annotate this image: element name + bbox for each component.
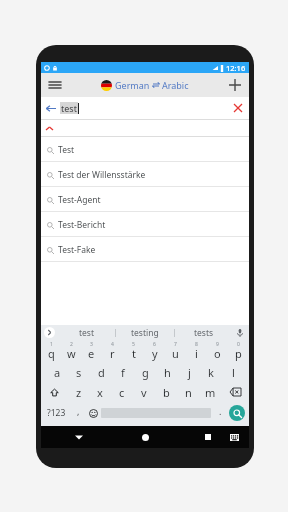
button[interactable]: a (46, 362, 68, 382)
button[interactable]: 2 (61, 340, 81, 362)
staticText: y (152, 346, 158, 361)
staticText: z (76, 385, 82, 400)
button[interactable]: 7 (165, 340, 186, 362)
staticText: Test (58, 144, 75, 156)
staticText: b (163, 385, 170, 400)
button[interactable]: 6 (144, 340, 165, 362)
staticText: 6 (153, 341, 156, 348)
staticText: m (205, 385, 216, 400)
staticText: g (142, 365, 149, 380)
button[interactable]: Home (137, 429, 153, 445)
staticText: . (219, 405, 222, 417)
button[interactable]: Test (41, 137, 249, 162)
button[interactable]: x (89, 382, 111, 402)
staticText: 3 (90, 341, 93, 348)
button[interactable]: , (71, 402, 85, 424)
staticText: o (214, 346, 221, 361)
staticText: 8 (195, 341, 198, 348)
button[interactable]: Shift (41, 382, 68, 402)
staticText: 12:16 (226, 63, 246, 73)
staticText: t (132, 346, 136, 361)
staticText: ?123 (47, 407, 66, 419)
staticText: German (115, 79, 150, 91)
button[interactable]: d (90, 362, 112, 382)
button[interactable]: German (101, 79, 189, 91)
staticText: k (208, 365, 214, 380)
button[interactable]: Emoji (85, 402, 101, 424)
staticText: v (141, 385, 147, 400)
button[interactable]: Backspace (221, 382, 249, 402)
button[interactable]: More suggestions (44, 327, 55, 338)
button[interactable]: Add (225, 75, 245, 95)
button[interactable]: Collapse (41, 120, 249, 136)
staticText: d (98, 365, 105, 380)
staticText: x (97, 385, 103, 400)
button[interactable]: c (111, 382, 133, 402)
staticText: i (195, 346, 198, 361)
button[interactable]: 5 (123, 340, 144, 362)
button[interactable]: z (68, 382, 89, 402)
staticText: testing (131, 327, 159, 339)
staticText: u (172, 346, 179, 361)
staticText: e (88, 346, 95, 361)
staticText: test (79, 327, 95, 339)
button[interactable]: Test-Bericht (41, 212, 249, 237)
button[interactable]: Menu (45, 75, 65, 95)
button[interactable]: 0 (228, 340, 249, 362)
staticText: 0 (237, 341, 240, 348)
staticText: j (188, 365, 191, 380)
staticText: f (121, 365, 125, 380)
staticText: 9 (216, 341, 219, 348)
staticText: c (119, 385, 125, 400)
button[interactable]: tests (175, 325, 233, 340)
button[interactable]: 1 (41, 340, 61, 362)
button[interactable]: testing (116, 325, 174, 340)
button[interactable]: n (177, 382, 199, 402)
button[interactable]: 9 (207, 340, 228, 362)
button[interactable]: v (133, 382, 155, 402)
staticText: p (235, 346, 242, 361)
staticText: q (48, 346, 55, 361)
button[interactable]: Search (229, 405, 245, 421)
button[interactable]: Back (41, 97, 249, 119)
button[interactable]: m (199, 382, 221, 402)
staticText: Test-Agent (58, 194, 101, 206)
button[interactable]: g (134, 362, 156, 382)
staticText: s (76, 365, 82, 380)
button[interactable]: h (156, 362, 178, 382)
button[interactable]: Back (71, 429, 87, 445)
staticText: Test-Bericht (58, 219, 106, 231)
button[interactable]: Voice input (234, 327, 246, 339)
staticText: tests (194, 327, 214, 339)
button[interactable]: Keyboard (227, 430, 241, 444)
button[interactable]: Test-Fake (41, 237, 249, 262)
staticText: w (67, 346, 76, 361)
staticText: h (164, 365, 171, 380)
staticText: 2 (70, 341, 73, 348)
button[interactable]: Recents (200, 429, 216, 445)
button[interactable]: . (211, 402, 229, 424)
staticText: 4 (111, 341, 114, 348)
staticText: Arabic (162, 79, 189, 91)
button[interactable]: Clear (231, 101, 245, 115)
button[interactable]: 8 (186, 340, 207, 362)
button[interactable]: 4 (102, 340, 123, 362)
button[interactable]: j (178, 362, 200, 382)
button[interactable]: b (155, 382, 177, 402)
staticText: Test der Willensstärke (58, 169, 146, 181)
staticText: 7 (174, 341, 177, 348)
button[interactable]: Test der Willensstärke (41, 162, 249, 187)
staticText: l (232, 365, 235, 380)
button[interactable]: k (200, 362, 222, 382)
staticText: n (185, 385, 192, 400)
staticText: , (77, 405, 80, 417)
staticText: 5 (132, 341, 135, 348)
button[interactable]: s (68, 362, 90, 382)
button[interactable]: ?123 (41, 402, 71, 424)
button[interactable]: 3 (81, 340, 102, 362)
button[interactable]: Test-Agent (41, 187, 249, 212)
button[interactable]: l (222, 362, 244, 382)
button[interactable]: f (112, 362, 134, 382)
button[interactable]: test (58, 325, 115, 340)
